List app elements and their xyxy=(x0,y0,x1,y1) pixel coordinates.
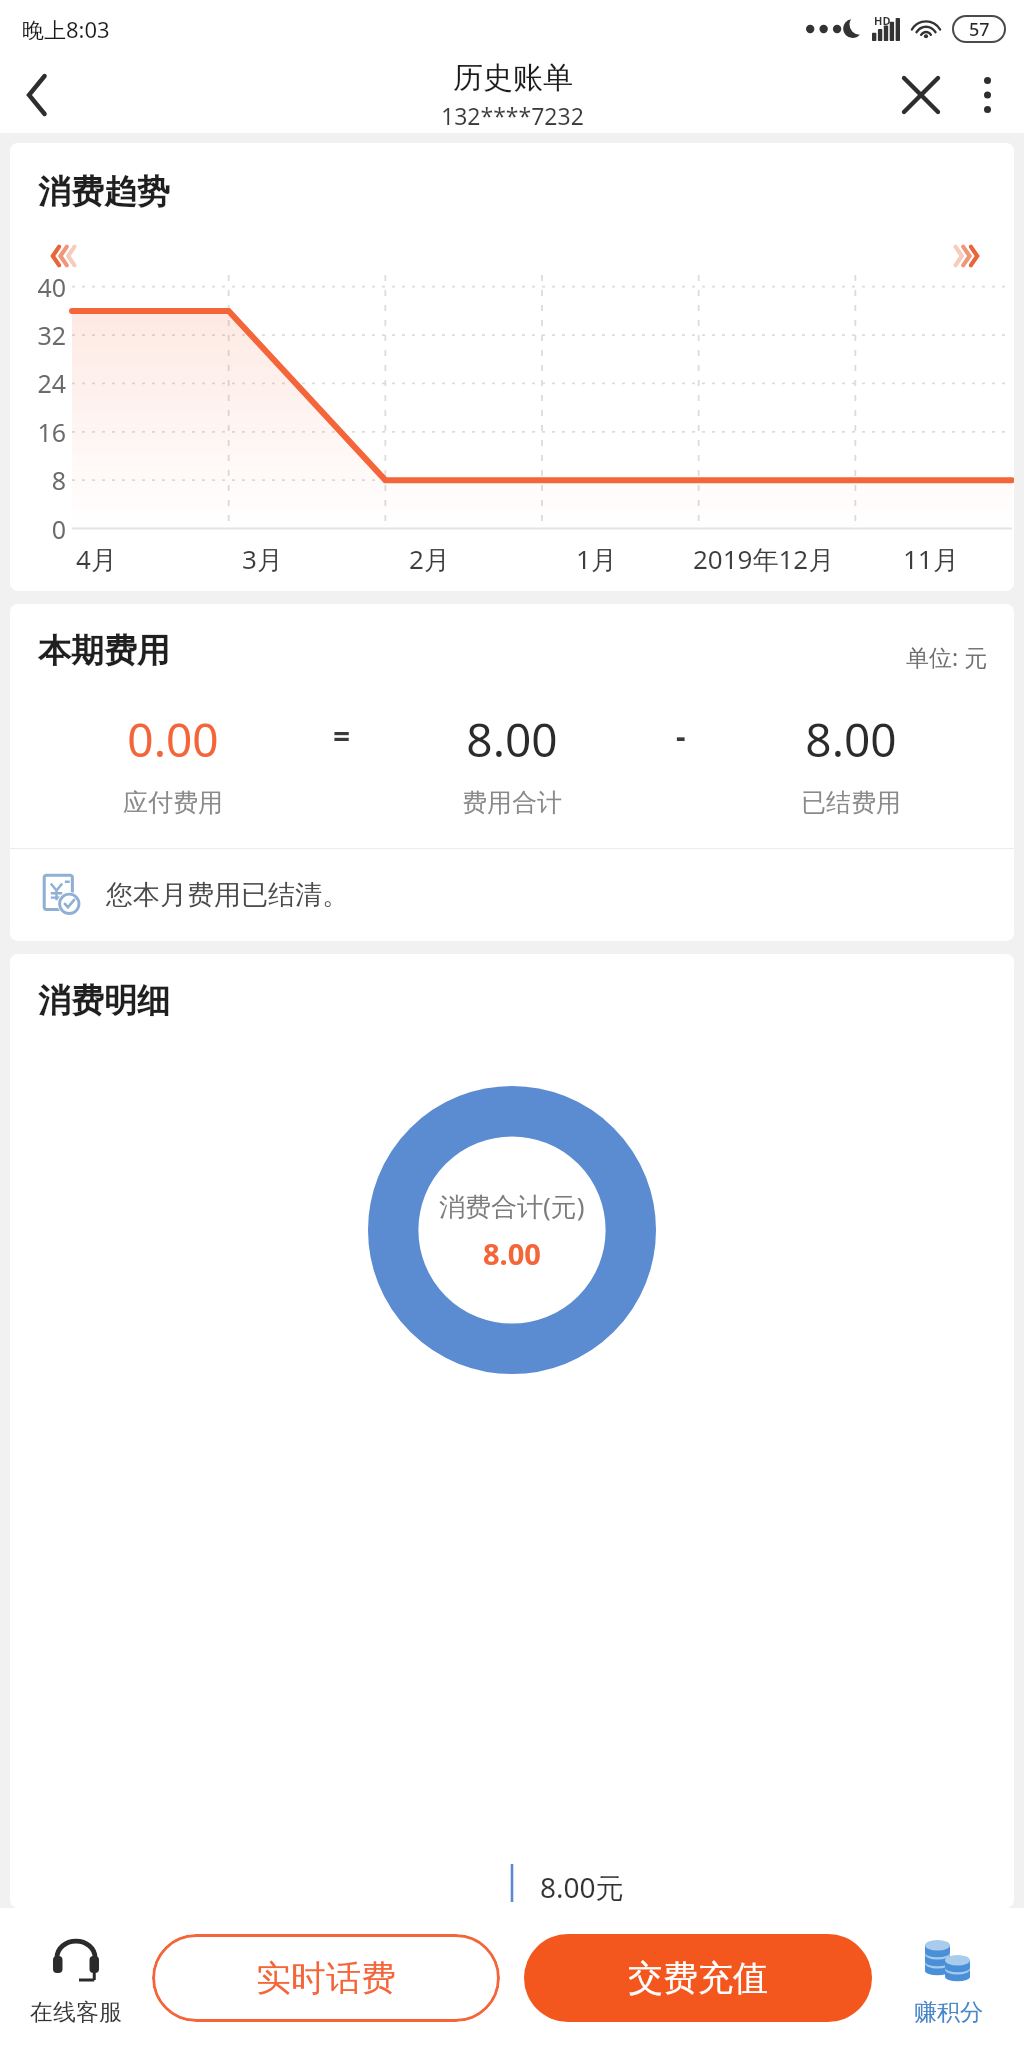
staticText: 132****7232 xyxy=(441,100,584,131)
staticText: 40 xyxy=(10,270,66,304)
staticText: 单位: 元 xyxy=(906,641,988,672)
staticText: 已结费用 xyxy=(801,787,901,818)
button[interactable]: Close xyxy=(886,60,956,130)
staticText: 8.00 xyxy=(483,1234,541,1273)
staticText: 本期费用 xyxy=(38,630,170,672)
staticText: - xyxy=(676,715,686,756)
staticText: 3月 xyxy=(242,541,283,577)
button[interactable]: Back xyxy=(0,58,74,132)
staticText: 1月 xyxy=(576,541,617,577)
button[interactable]: Next months xyxy=(944,237,990,275)
staticText: 8.00 xyxy=(466,708,558,771)
staticText: 赚积分 xyxy=(914,1998,983,2027)
staticText: 11月 xyxy=(903,541,959,577)
staticText: 8.00元 xyxy=(540,1868,624,1906)
staticText: 应付费用 xyxy=(123,787,223,818)
staticText: HD xyxy=(874,13,891,28)
staticText: = xyxy=(333,715,351,756)
button[interactable]: 实时话费 xyxy=(152,1934,500,2022)
staticText: 您本月费用已结清。 xyxy=(106,878,349,912)
staticText: 消费明细 xyxy=(38,980,170,1022)
staticText: 实时话费 xyxy=(256,1956,396,2000)
button[interactable]: Previous months xyxy=(40,237,86,275)
staticText: 费用合计 xyxy=(462,787,562,818)
staticText: 2月 xyxy=(409,541,450,577)
staticText: 24 xyxy=(10,366,66,400)
staticText: 8.00 xyxy=(805,708,897,771)
staticText: 历史账单 xyxy=(453,59,573,97)
button[interactable]: 赚积分 xyxy=(872,1908,1024,2048)
button[interactable]: 交费充值 xyxy=(524,1934,872,2022)
staticText: 8 xyxy=(10,463,66,497)
staticText: 0.00 xyxy=(127,708,219,771)
staticText: 16 xyxy=(10,415,66,449)
staticText: 交费充值 xyxy=(628,1956,768,2000)
button[interactable]: 在线客服 xyxy=(0,1908,152,2048)
staticText: 57 xyxy=(969,17,990,42)
staticText: 4月 xyxy=(76,541,117,577)
staticText: 消费趋势 xyxy=(38,171,170,213)
button[interactable]: More options xyxy=(956,64,1018,126)
staticText: 在线客服 xyxy=(30,1998,122,2027)
staticText: 32 xyxy=(10,318,66,352)
staticText: 晚上8:03 xyxy=(22,14,110,44)
staticText: 消费合计(元) xyxy=(439,1188,585,1224)
staticText: 0 xyxy=(10,512,66,546)
staticText: 2019年12月 xyxy=(693,541,835,577)
